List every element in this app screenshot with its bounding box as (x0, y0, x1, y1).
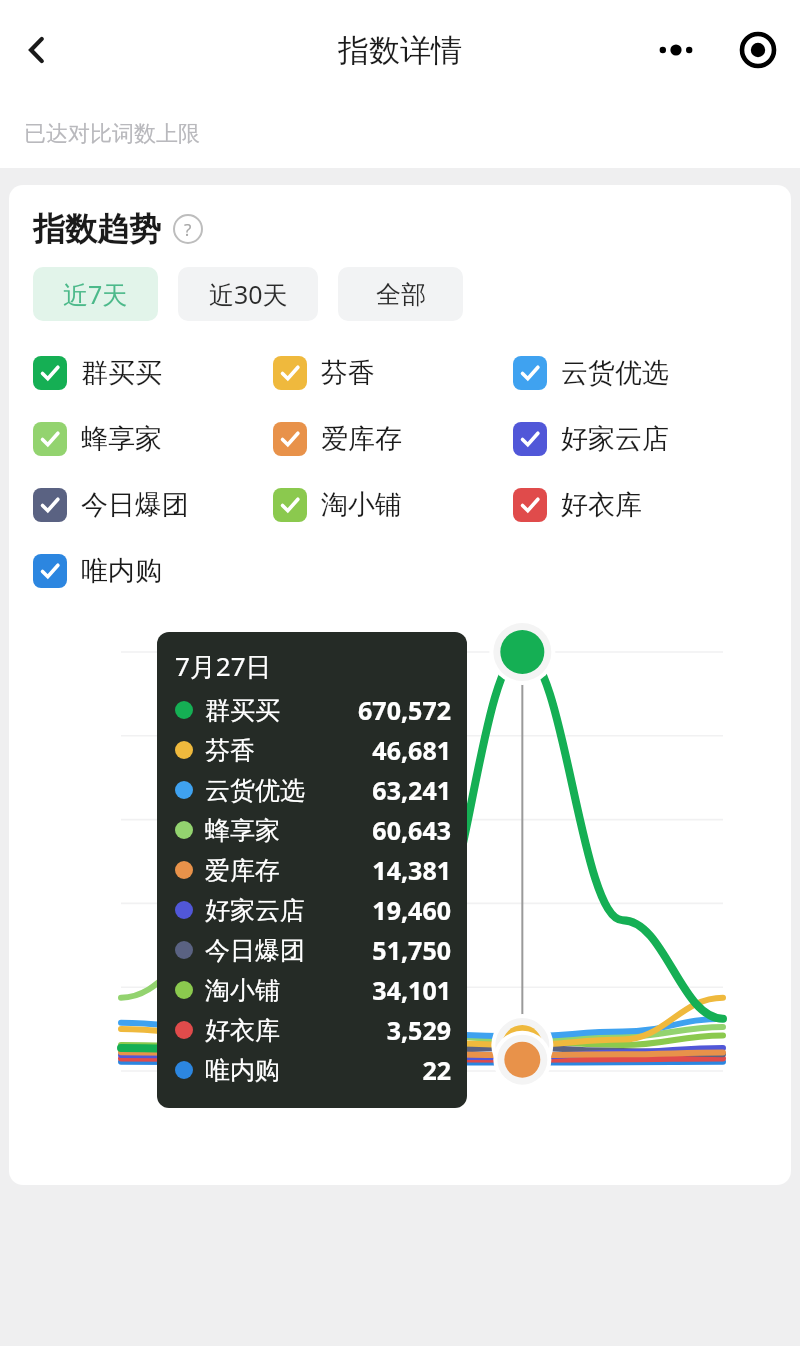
staticText: 今日爆团 (81, 488, 189, 522)
button[interactable]: 唯内购 (33, 538, 273, 604)
staticText: 唯内购 (81, 554, 162, 588)
staticText: 670,572 (358, 693, 451, 727)
staticText: 46,681 (372, 733, 451, 767)
staticText: ? (184, 218, 192, 241)
staticText: 爱库存 (205, 855, 280, 886)
staticText: 爱库存 (321, 422, 402, 456)
staticText: 今日爆团 (205, 935, 305, 966)
staticText: 好衣库 (205, 1015, 280, 1046)
button[interactable]: 群买买 (33, 340, 273, 406)
button[interactable]: 好衣库 (513, 472, 753, 538)
staticText: 芬香 (321, 356, 375, 390)
staticText: 好衣库 (561, 488, 642, 522)
staticText: 22 (422, 1053, 451, 1087)
button[interactable]: Help (173, 214, 203, 244)
staticText: 云货优选 (561, 356, 669, 390)
staticText: 近7天 (63, 277, 128, 311)
staticText: 蜂享家 (205, 815, 280, 846)
staticText: 好家云店 (205, 895, 305, 926)
button[interactable]: More options (648, 22, 704, 78)
staticText: 3,529 (386, 1013, 451, 1047)
staticText: 近30天 (209, 277, 288, 311)
staticText: 群买买 (81, 356, 162, 390)
button[interactable]: 爱库存 (273, 406, 513, 472)
staticText: 全部 (376, 279, 426, 310)
button[interactable]: 全部 (338, 267, 463, 321)
staticText: 已达对比词数上限 (24, 120, 200, 148)
staticText: 14,381 (372, 853, 451, 887)
button[interactable]: 云货优选 (513, 340, 753, 406)
button[interactable]: Target (730, 22, 786, 78)
button[interactable]: 近30天 (178, 267, 318, 321)
staticText: 淘小铺 (205, 975, 280, 1006)
button[interactable]: 今日爆团 (33, 472, 273, 538)
staticText: 19,460 (372, 893, 451, 927)
staticText: 7月27日 (175, 648, 272, 684)
staticText: 云货优选 (205, 775, 305, 806)
button[interactable]: 芬香 (273, 340, 513, 406)
button[interactable]: 近7天 (33, 267, 158, 321)
staticText: 唯内购 (205, 1055, 280, 1086)
button[interactable]: 淘小铺 (273, 472, 513, 538)
staticText: 指数趋势 (33, 209, 161, 249)
staticText: 蜂享家 (81, 422, 162, 456)
staticText: 淘小铺 (321, 488, 402, 522)
staticText: 好家云店 (561, 422, 669, 456)
staticText: 63,241 (372, 773, 451, 807)
staticText: 芬香 (205, 735, 255, 766)
staticText: 51,750 (372, 933, 451, 967)
staticText: 群买买 (205, 695, 280, 726)
staticText: 60,643 (372, 813, 451, 847)
staticText: 指数详情 (338, 31, 462, 70)
button[interactable]: 蜂享家 (33, 406, 273, 472)
staticText: 34,101 (372, 973, 451, 1007)
button[interactable]: 好家云店 (513, 406, 753, 472)
button[interactable]: Back (8, 21, 66, 79)
